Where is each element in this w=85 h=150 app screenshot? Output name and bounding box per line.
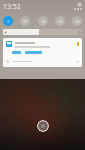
button[interactable]: Bluetooth: [20, 16, 30, 26]
button[interactable]: Brightness: [3, 29, 82, 35]
button[interactable]: Action one: [3, 38, 82, 67]
button[interactable]: [3, 57, 82, 65]
button[interactable]: Auto-rotate: [72, 16, 82, 26]
button[interactable]: Action one: [12, 51, 21, 54]
staticText: 13:52: [3, 2, 21, 12]
button[interactable]: Flashlight: [55, 16, 65, 26]
button[interactable]: Action two: [25, 51, 42, 54]
button[interactable]: Settings: [77, 2, 82, 7]
button[interactable]: Do not disturb: [38, 16, 48, 26]
button[interactable]: Settings: [37, 120, 49, 132]
button[interactable]: Wi-Fi: [3, 16, 13, 26]
